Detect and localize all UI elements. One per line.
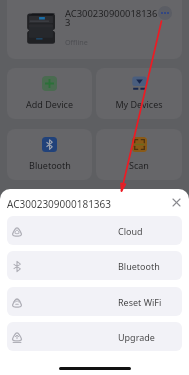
staticText: Reset WiFi bbox=[118, 296, 162, 308]
button[interactable]: Add Device bbox=[7, 68, 92, 119]
staticText: Bluetooth bbox=[29, 159, 71, 171]
button[interactable]: Close bbox=[168, 194, 185, 211]
button[interactable]: Cloud bbox=[7, 216, 182, 245]
button[interactable]: Scan bbox=[96, 129, 182, 180]
staticText: Bluetooth bbox=[118, 260, 160, 272]
button[interactable]: Reset WiFi bbox=[7, 287, 182, 316]
staticText: Add Device bbox=[26, 98, 73, 110]
button[interactable]: My Devices bbox=[96, 68, 182, 119]
staticText: Scan bbox=[129, 159, 149, 171]
staticText: Cloud bbox=[118, 225, 143, 237]
staticText: AC3002309000181363 bbox=[65, 7, 160, 29]
staticText: My Devices bbox=[115, 98, 163, 110]
button[interactable]: Upgrade bbox=[7, 322, 182, 351]
staticText: Offline bbox=[65, 37, 88, 47]
staticText: AC3002309000181363 bbox=[7, 197, 112, 211]
button[interactable]: More options bbox=[158, 6, 172, 20]
staticText: Upgrade bbox=[118, 331, 155, 343]
button[interactable]: Bluetooth bbox=[7, 129, 92, 180]
button[interactable]: AC3002309000181363 bbox=[7, 0, 182, 59]
button[interactable]: Bluetooth bbox=[7, 251, 182, 280]
